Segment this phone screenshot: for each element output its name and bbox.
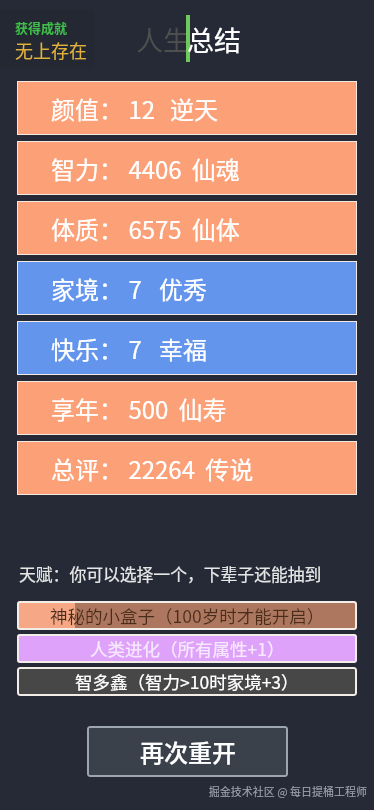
staticText: 再次重开 bbox=[140, 734, 236, 769]
button[interactable]: 智力： 4406 仙魂 bbox=[17, 141, 357, 195]
staticText: 颜值： 12 逆天 bbox=[51, 91, 218, 126]
staticText: 人类进化（所有属性+1） bbox=[90, 636, 285, 661]
staticText: 神秘的小盒子（100岁时才能开启） bbox=[50, 603, 325, 628]
button[interactable]: 体质： 6575 仙体 bbox=[17, 201, 357, 255]
staticText: 掘金技术社区 @ 每日提桶工程师 bbox=[208, 783, 367, 799]
button[interactable]: 家境： 7 优秀 bbox=[17, 261, 357, 315]
staticText: 总结 bbox=[187, 20, 241, 59]
staticText: 天赋：你可以选择一个，下辈子还能抽到 bbox=[19, 562, 322, 586]
button[interactable]: 人类进化（所有属性+1） bbox=[17, 634, 357, 663]
staticText: 获得成就 bbox=[15, 18, 68, 37]
button[interactable]: 享年： 500 仙寿 bbox=[17, 381, 357, 435]
button[interactable]: 总评： 22264 传说 bbox=[17, 441, 357, 495]
button[interactable]: 神秘的小盒子（100岁时才能开启） bbox=[17, 601, 357, 630]
button[interactable]: 智多鑫（智力>10时家境+3） bbox=[17, 667, 357, 696]
staticText: 总评： 22264 传说 bbox=[51, 451, 254, 486]
staticText: 人生 bbox=[136, 20, 190, 59]
staticText: 无上存在 bbox=[15, 37, 87, 63]
staticText: 智力： 4406 仙魂 bbox=[51, 151, 240, 186]
staticText: 智多鑫（智力>10时家境+3） bbox=[75, 669, 299, 694]
staticText: 体质： 6575 仙体 bbox=[51, 211, 240, 246]
button[interactable]: 再次重开 bbox=[87, 726, 288, 777]
button[interactable]: 颜值： 12 逆天 bbox=[17, 81, 357, 135]
button[interactable]: 快乐： 7 幸福 bbox=[17, 321, 357, 375]
staticText: 快乐： 7 幸福 bbox=[51, 331, 208, 366]
staticText: 享年： 500 仙寿 bbox=[51, 391, 227, 426]
staticText: 家境： 7 优秀 bbox=[51, 271, 208, 306]
